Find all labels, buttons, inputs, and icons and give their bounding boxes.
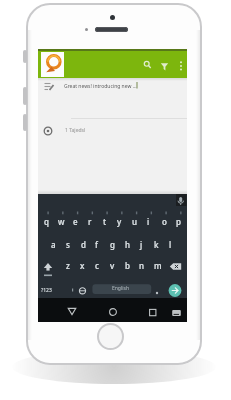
button[interactable] [167, 282, 183, 298]
button[interactable] [92, 284, 151, 294]
staticText: m [154, 260, 162, 271]
staticText: k [154, 239, 159, 250]
button[interactable] [144, 303, 162, 320]
button[interactable] [168, 303, 185, 320]
staticText: g [110, 239, 115, 250]
staticText: h [125, 239, 131, 250]
staticText: p [176, 216, 181, 227]
staticText: u [132, 216, 138, 227]
staticText: b [125, 260, 130, 271]
staticText: a [51, 239, 56, 250]
staticText: n [139, 260, 145, 271]
staticText: i [147, 216, 150, 227]
staticText: Great news! introducing new ... [64, 83, 137, 90]
staticText: x [80, 260, 85, 271]
button[interactable] [38, 79, 187, 96]
staticText: c [95, 260, 99, 271]
staticText: o [162, 216, 167, 227]
button[interactable] [63, 303, 81, 320]
staticText: j [140, 239, 143, 250]
staticText: y [117, 216, 122, 227]
staticText: s [66, 239, 70, 250]
button[interactable] [97, 323, 124, 350]
staticText: f [95, 239, 98, 250]
staticText: ?123 [41, 287, 52, 294]
button[interactable] [40, 122, 160, 139]
staticText: t [103, 216, 107, 227]
staticText: v [110, 260, 115, 271]
staticText: d [81, 239, 86, 250]
staticText: 1 Tajedsl [65, 127, 86, 134]
staticText: z [66, 260, 70, 271]
staticText: q [44, 216, 49, 227]
button[interactable] [104, 303, 122, 320]
staticText: English [112, 285, 130, 292]
staticText: l [169, 239, 172, 250]
button[interactable] [38, 49, 187, 78]
staticText: e [73, 216, 78, 227]
button[interactable] [41, 52, 64, 77]
staticText: r [88, 216, 92, 227]
staticText: w [58, 216, 65, 227]
